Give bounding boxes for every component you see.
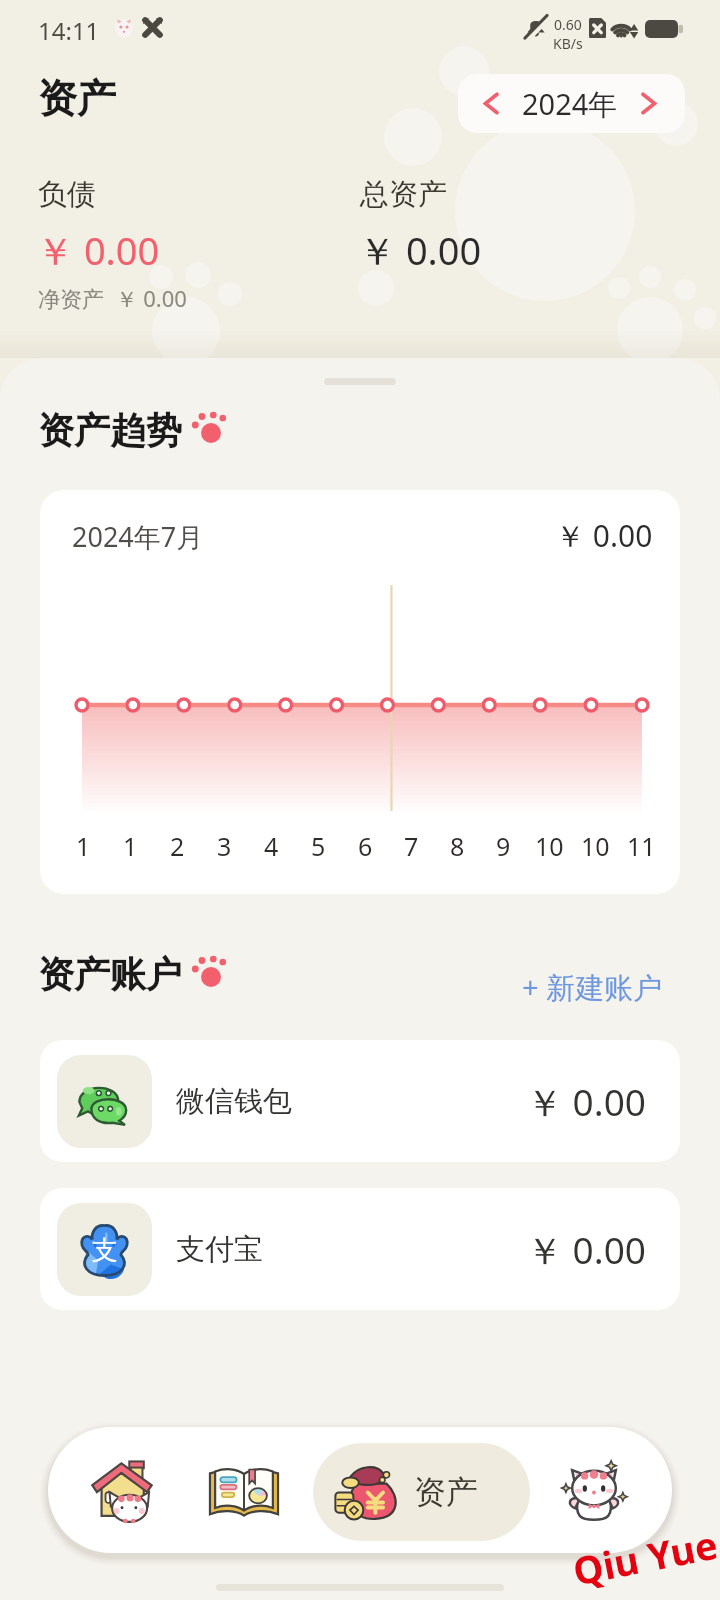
staticText: ￥ 0.00 bbox=[36, 224, 160, 276]
button[interactable]: + 新建账户 bbox=[516, 963, 669, 1011]
staticText: 2 bbox=[170, 829, 185, 863]
button[interactable]: 支 bbox=[40, 1188, 680, 1310]
staticText: 总资产 bbox=[360, 176, 447, 213]
button[interactable]: Previous year bbox=[458, 74, 685, 133]
staticText: 10 bbox=[535, 829, 564, 863]
staticText: 7 bbox=[404, 829, 419, 863]
staticText: KB/s bbox=[553, 34, 583, 53]
staticText: 14:11 bbox=[38, 14, 100, 47]
staticText: 3 bbox=[217, 829, 232, 863]
staticText: 10 bbox=[581, 829, 610, 863]
staticText: ￥ 0.00 bbox=[526, 1224, 647, 1275]
staticText: 资产账户 bbox=[38, 952, 182, 997]
button[interactable]: Home bbox=[76, 1433, 172, 1547]
staticText: 支 bbox=[92, 1234, 118, 1267]
staticText: 负债 bbox=[38, 176, 96, 213]
other: Next year bbox=[641, 93, 657, 114]
staticText: 8 bbox=[450, 829, 465, 863]
staticText: 1 bbox=[123, 829, 138, 863]
staticText: + 新建账户 bbox=[522, 967, 663, 1007]
button[interactable]: Profile bbox=[546, 1429, 642, 1553]
staticText: 5 bbox=[311, 829, 326, 863]
staticText: 6 bbox=[358, 829, 373, 863]
staticText: 资产 bbox=[38, 74, 116, 123]
staticText: 2024年 bbox=[522, 84, 618, 124]
staticText: 0.60 bbox=[554, 15, 582, 34]
staticText: Qiu Yue bbox=[568, 1517, 720, 1597]
staticText: 支付宝 bbox=[176, 1231, 263, 1268]
staticText: 1 bbox=[76, 829, 91, 863]
staticText: 4 bbox=[264, 829, 279, 863]
staticText: 资产趋势 bbox=[38, 408, 182, 453]
staticText: 净资产 ￥ 0.00 bbox=[38, 283, 187, 313]
other: Previous year bbox=[483, 93, 499, 114]
staticText: ￥ 0.00 bbox=[526, 1076, 647, 1127]
staticText: ￥ 0.00 bbox=[555, 515, 653, 556]
staticText: 资产 bbox=[414, 1472, 478, 1512]
staticText: 11 bbox=[627, 829, 656, 863]
staticText: 微信钱包 bbox=[176, 1083, 292, 1120]
staticText: 2024年7月 bbox=[72, 518, 204, 555]
button[interactable]: 微信钱包 bbox=[40, 1040, 680, 1162]
staticText: 9 bbox=[496, 829, 511, 863]
button[interactable]: Ledger bbox=[196, 1433, 292, 1547]
button[interactable]: 资产 bbox=[313, 1443, 530, 1541]
staticText: ￥ 0.00 bbox=[358, 224, 482, 276]
